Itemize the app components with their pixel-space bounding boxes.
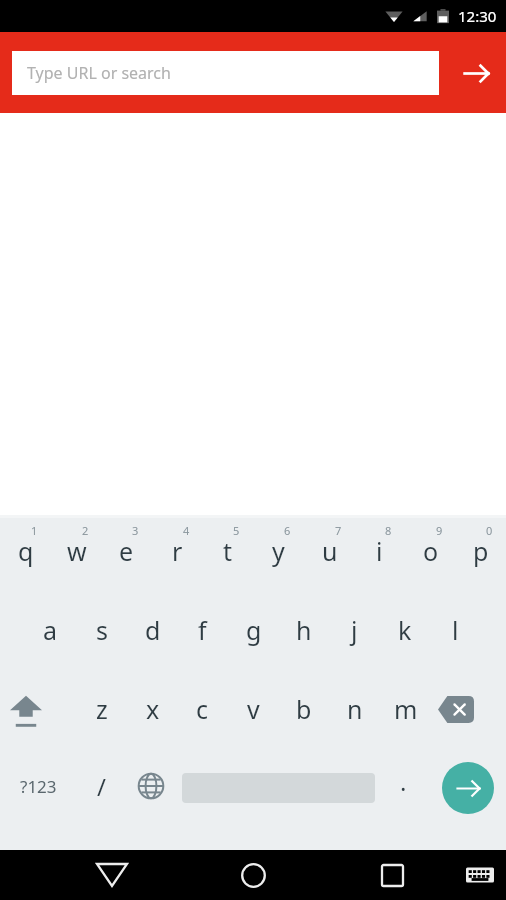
staticText: n xyxy=(347,692,363,726)
staticText: b xyxy=(296,692,312,726)
button[interactable]: ?123 xyxy=(2,755,74,817)
staticText: 9 xyxy=(436,523,443,538)
staticText: j xyxy=(351,613,358,647)
staticText: m xyxy=(394,692,418,726)
button[interactable]: s xyxy=(76,595,127,675)
staticText: c xyxy=(196,692,209,726)
staticText: x xyxy=(146,692,160,726)
button[interactable]: b xyxy=(278,675,329,755)
button[interactable]: 8 xyxy=(354,518,405,595)
staticText: u xyxy=(322,534,338,568)
button[interactable]: f xyxy=(177,595,228,675)
button[interactable]: g xyxy=(228,595,279,675)
button[interactable]: Switch keyboard xyxy=(454,850,506,900)
button[interactable]: 9 xyxy=(405,518,456,595)
staticText: r xyxy=(172,534,183,568)
staticText: a xyxy=(43,613,58,647)
button[interactable]: Go xyxy=(442,762,494,814)
button[interactable]: 2 xyxy=(51,518,102,595)
button[interactable]: k xyxy=(379,595,430,675)
button[interactable]: v xyxy=(228,675,279,755)
staticText: v xyxy=(247,692,260,726)
button[interactable]: Back xyxy=(78,850,146,900)
staticText: Type URL or search xyxy=(27,62,171,84)
button[interactable]: 7 xyxy=(304,518,355,595)
staticText: ?123 xyxy=(20,775,57,798)
button[interactable]: 0 xyxy=(455,518,506,595)
staticText: / xyxy=(97,770,106,803)
staticText: g xyxy=(246,613,262,647)
staticText: 4 xyxy=(183,523,190,538)
staticText: 2 xyxy=(82,523,89,538)
staticText: q xyxy=(18,534,34,568)
staticText: w xyxy=(67,534,87,568)
staticText: 6 xyxy=(284,523,291,538)
staticText: 3 xyxy=(132,523,139,538)
staticText: 12:30 xyxy=(458,6,497,26)
staticText: 1 xyxy=(31,523,38,538)
button[interactable]: d xyxy=(127,595,178,675)
button[interactable]: h xyxy=(278,595,329,675)
staticText: k xyxy=(398,613,412,647)
staticText: i xyxy=(376,534,383,568)
button[interactable]: / xyxy=(76,755,126,817)
staticText: z xyxy=(96,692,108,726)
button[interactable]: Shift xyxy=(0,675,51,755)
button[interactable]: Go xyxy=(446,41,506,105)
staticText: 0 xyxy=(486,523,493,538)
button[interactable]: m xyxy=(380,675,431,755)
staticText: t xyxy=(223,534,233,568)
staticText: 7 xyxy=(335,523,342,538)
button[interactable]: Type URL or search xyxy=(12,51,439,95)
staticText: . xyxy=(400,765,407,798)
staticText: p xyxy=(473,534,489,568)
staticText: l xyxy=(452,613,459,647)
button[interactable]: Backspace xyxy=(430,675,481,755)
button[interactable]: Change language xyxy=(126,755,176,817)
button[interactable]: x xyxy=(127,675,178,755)
staticText: f xyxy=(198,613,207,647)
button[interactable]: 1 xyxy=(0,518,51,595)
button[interactable]: 5 xyxy=(202,518,253,595)
staticText: y xyxy=(272,534,285,568)
button[interactable]: j xyxy=(329,595,380,675)
button[interactable]: Recent apps xyxy=(358,850,426,900)
staticText: 5 xyxy=(233,523,240,538)
staticText: d xyxy=(145,613,161,647)
button[interactable]: l xyxy=(430,595,481,675)
staticText: s xyxy=(96,613,108,647)
button[interactable]: . xyxy=(383,755,423,817)
staticText: e xyxy=(119,534,134,568)
button[interactable]: 3 xyxy=(101,518,152,595)
staticText: h xyxy=(296,613,312,647)
button[interactable]: a xyxy=(25,595,76,675)
button[interactable]: Home xyxy=(219,850,287,900)
button[interactable]: n xyxy=(329,675,380,755)
button[interactable]: 6 xyxy=(253,518,304,595)
button[interactable]: z xyxy=(76,675,127,755)
button[interactable]: c xyxy=(177,675,228,755)
button[interactable]: 4 xyxy=(152,518,203,595)
staticText: o xyxy=(423,534,439,568)
staticText: 8 xyxy=(385,523,392,538)
